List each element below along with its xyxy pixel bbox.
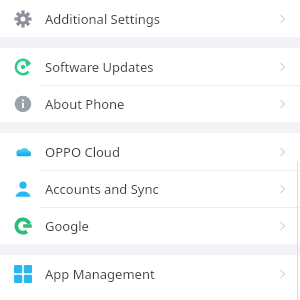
staticText: OPPO Cloud (45, 143, 276, 161)
staticText: Accounts and Sync (45, 180, 276, 198)
button[interactable]: OPPO Cloud (0, 133, 300, 170)
staticText: App Management (45, 265, 276, 283)
button[interactable]: Accounts and Sync (0, 170, 300, 207)
button[interactable]: Google (0, 207, 300, 244)
button[interactable]: About Phone (0, 85, 300, 122)
button[interactable]: Additional Settings (0, 0, 300, 37)
button[interactable]: App Management (0, 255, 300, 292)
staticText: About Phone (45, 95, 276, 113)
staticText: Software Updates (45, 58, 276, 76)
button[interactable]: Software Updates (0, 48, 300, 85)
staticText: Google (45, 217, 276, 235)
staticText: Additional Settings (45, 10, 276, 28)
